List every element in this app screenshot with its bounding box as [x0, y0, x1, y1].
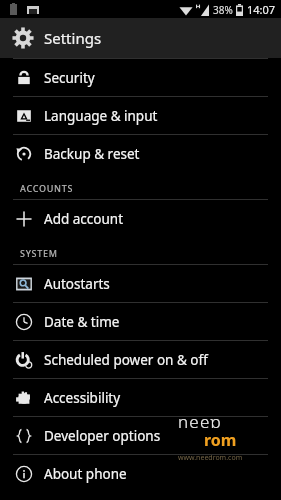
button[interactable]: Add account [0, 200, 281, 237]
button[interactable]: Developer options [0, 417, 281, 454]
staticText: Language & input [44, 107, 158, 125]
staticText: 38% [213, 3, 233, 17]
button[interactable]: Autostarts [0, 265, 281, 302]
staticText: 14:07 [247, 2, 276, 17]
staticText: Date & time [44, 313, 120, 331]
button[interactable]: About phone [0, 455, 281, 492]
staticText: rom [204, 429, 237, 451]
staticText: Security [44, 69, 95, 87]
staticText: Backup & reset [44, 145, 140, 163]
button[interactable]: Scheduled power on & off [0, 341, 281, 378]
staticText: Accessibility [44, 389, 121, 407]
button[interactable]: Date & time [0, 303, 281, 340]
staticText: www.needrom.com [178, 453, 243, 463]
button[interactable]: Backup & reset [0, 135, 281, 172]
staticText: neeɒ [178, 410, 222, 433]
staticText: SYSTEM [20, 247, 58, 259]
staticText: Add account [44, 210, 124, 228]
staticText: ACCOUNTS [20, 182, 74, 194]
button[interactable]: Security [0, 59, 281, 96]
staticText: Autostarts [44, 275, 110, 293]
staticText: Settings [44, 28, 102, 48]
staticText: Developer options [44, 427, 161, 445]
button[interactable]: Language & input [0, 97, 281, 134]
button[interactable]: Accessibility [0, 379, 281, 416]
staticText: Scheduled power on & off [44, 351, 208, 369]
staticText: About phone [44, 465, 127, 483]
